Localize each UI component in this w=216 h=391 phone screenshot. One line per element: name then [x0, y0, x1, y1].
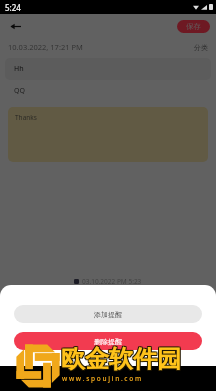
button[interactable]: 保存 — [177, 20, 210, 33]
staticText: 欧金软件园 — [60, 345, 180, 375]
button[interactable]: 添加提醒 — [14, 305, 202, 323]
staticText: 03.10.2022 PM 5:23 — [82, 277, 142, 286]
staticText: Hh — [14, 64, 24, 74]
staticText: 10.03.2022, 17:21 PM — [8, 42, 83, 52]
staticText: 欧金软件园 — [62, 343, 182, 373]
staticText: 添加提醒 — [94, 310, 122, 319]
button[interactable]: 删除提醒 — [14, 332, 202, 350]
staticText: 5:24 — [5, 2, 21, 13]
staticText: 欧金软件园 — [60, 344, 180, 374]
button[interactable]: Back — [4, 15, 26, 37]
staticText: w w w . s p o u j i n . c o m — [62, 374, 142, 383]
staticText: QQ — [14, 86, 25, 96]
staticText: 删除提醒 — [94, 337, 122, 346]
staticText: 欧金软件园 — [62, 345, 182, 375]
staticText: 欧金软件园 — [61, 344, 181, 374]
staticText: 分类 — [194, 43, 208, 52]
staticText: Thanks — [15, 113, 37, 122]
staticText: 欧金软件园 — [61, 345, 181, 375]
staticText: 欧金软件园 — [60, 343, 180, 373]
button[interactable]: 分类 — [186, 41, 216, 54]
staticText: 欧金软件园 — [62, 344, 182, 374]
staticText: 保存 — [186, 22, 201, 31]
staticText: 欧金软件园 — [61, 343, 181, 373]
